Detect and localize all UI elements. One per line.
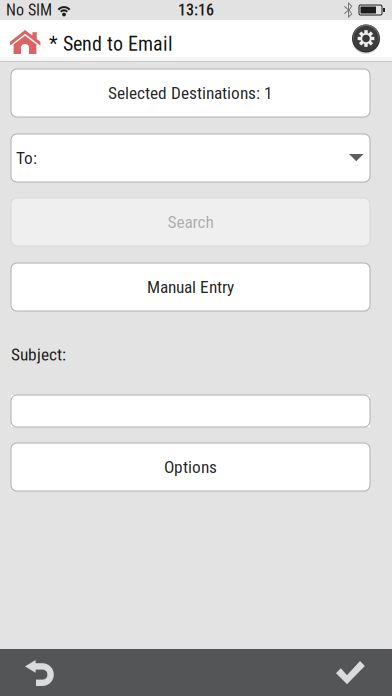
staticText: Subject: (11, 344, 66, 365)
staticText: * Send to Email (49, 32, 173, 56)
button[interactable]: Options (11, 443, 370, 491)
button[interactable]: Confirm (309, 649, 392, 696)
button[interactable]: To: (11, 134, 370, 182)
staticText: Search (167, 212, 213, 232)
button[interactable]: Back (0, 649, 80, 696)
staticText: Options (164, 457, 217, 477)
button[interactable]: Home (10, 23, 41, 54)
staticText: Selected Destinations: 1 (108, 83, 273, 103)
button[interactable]: Selected Destinations: 1 (11, 69, 370, 117)
staticText: 13:16 (178, 1, 214, 19)
staticText: No SIM (6, 1, 52, 19)
staticText: To: (16, 148, 37, 168)
button[interactable]: Manual Entry (11, 263, 370, 311)
staticText: Manual Entry (147, 277, 234, 297)
button[interactable]: Settings (351, 23, 381, 54)
